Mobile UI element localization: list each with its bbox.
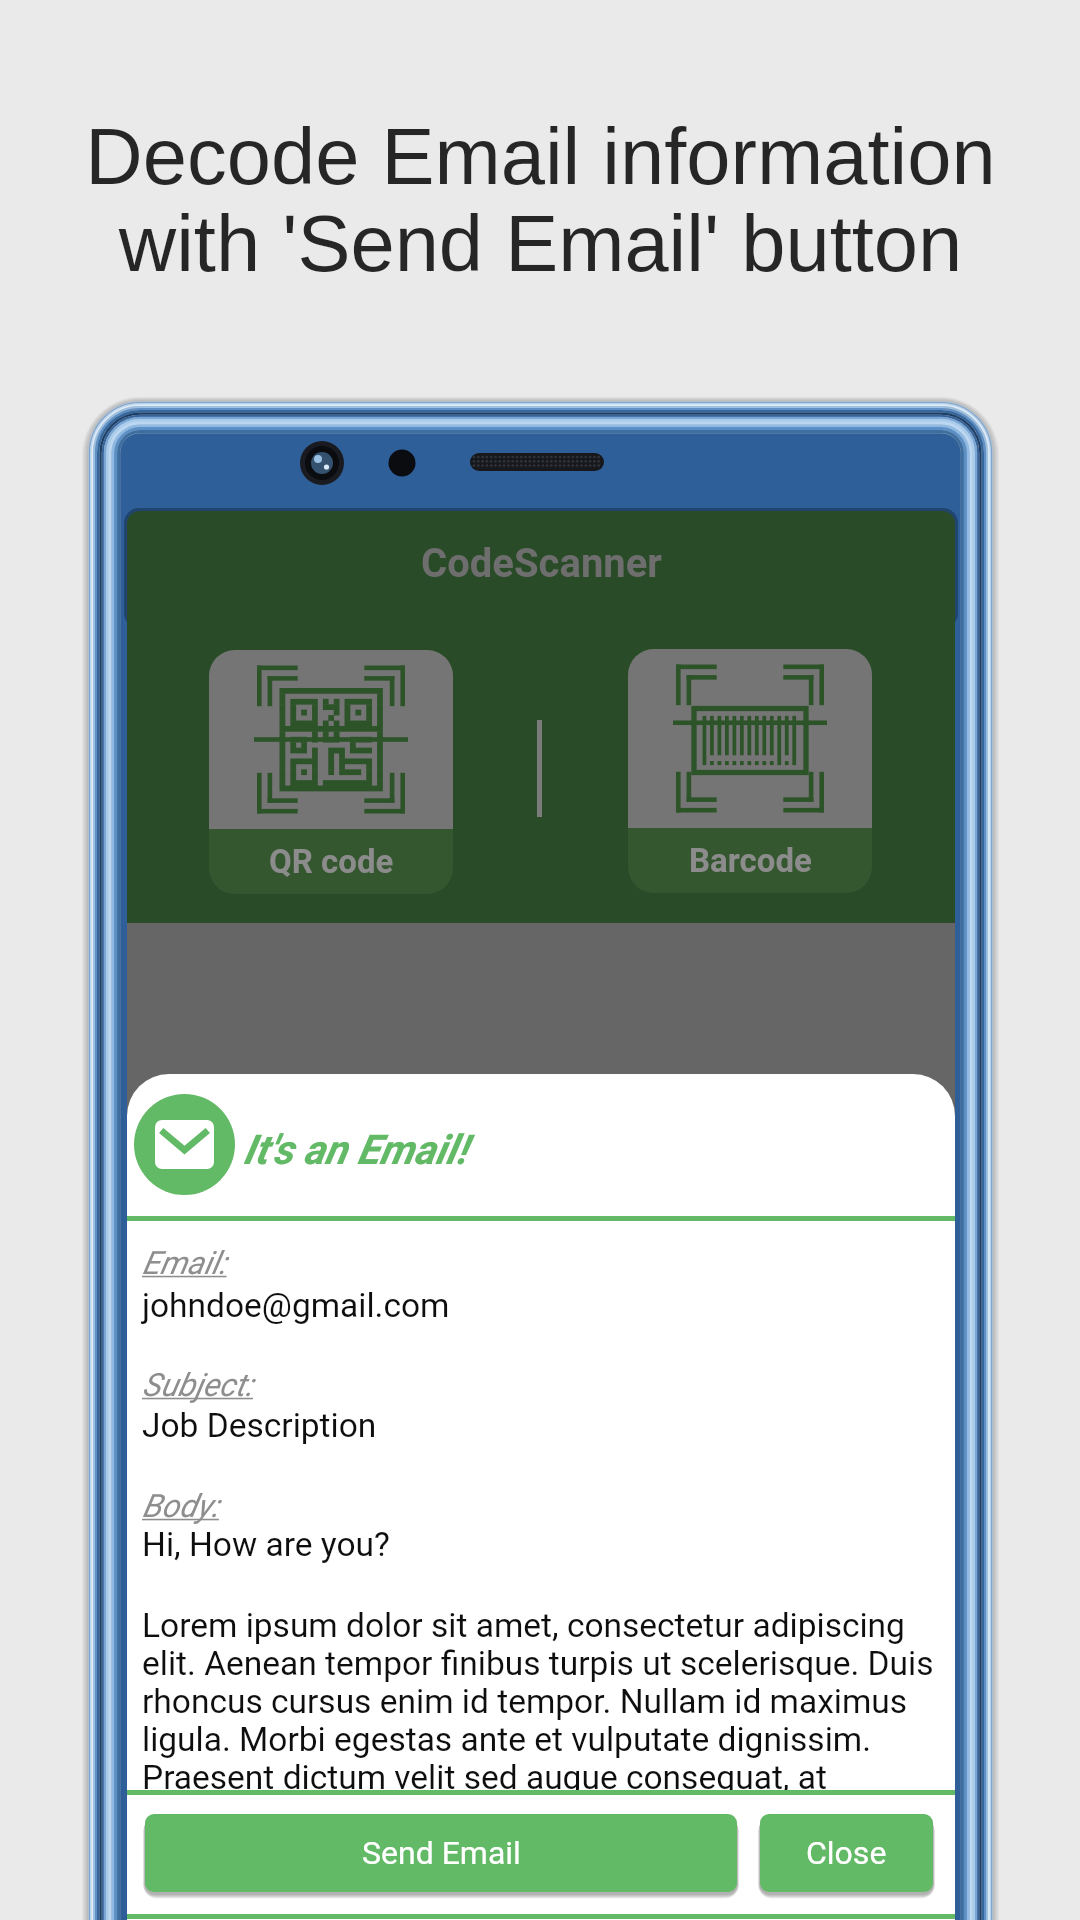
button[interactable]: QR code [209,650,453,894]
button[interactable]: Send Email [145,1814,737,1892]
staticText: Subject: [142,1366,253,1404]
staticText: QR code [269,842,394,881]
staticText: Barcode [689,841,812,880]
staticText: Lorem ipsum dolor sit amet, consectetur … [142,1606,942,1790]
staticText: Job Description [142,1406,377,1445]
staticText: CodeScanner [421,540,662,587]
staticText: Send Email [362,1834,521,1872]
staticText: It's an Email! [243,1126,467,1174]
staticText: Hi, How are you? [142,1525,390,1564]
staticText: Close [806,1834,887,1872]
other: Email result [134,1094,235,1195]
button[interactable]: Barcode [628,649,872,893]
button[interactable]: Email result [127,1074,955,1217]
staticText: johndoe@gmail.com [142,1286,450,1325]
button[interactable]: Close [760,1814,933,1892]
staticText: Email: [142,1244,227,1282]
staticText: Body: [142,1487,219,1525]
staticText: Decode Email information with 'Send Emai… [85,112,996,288]
